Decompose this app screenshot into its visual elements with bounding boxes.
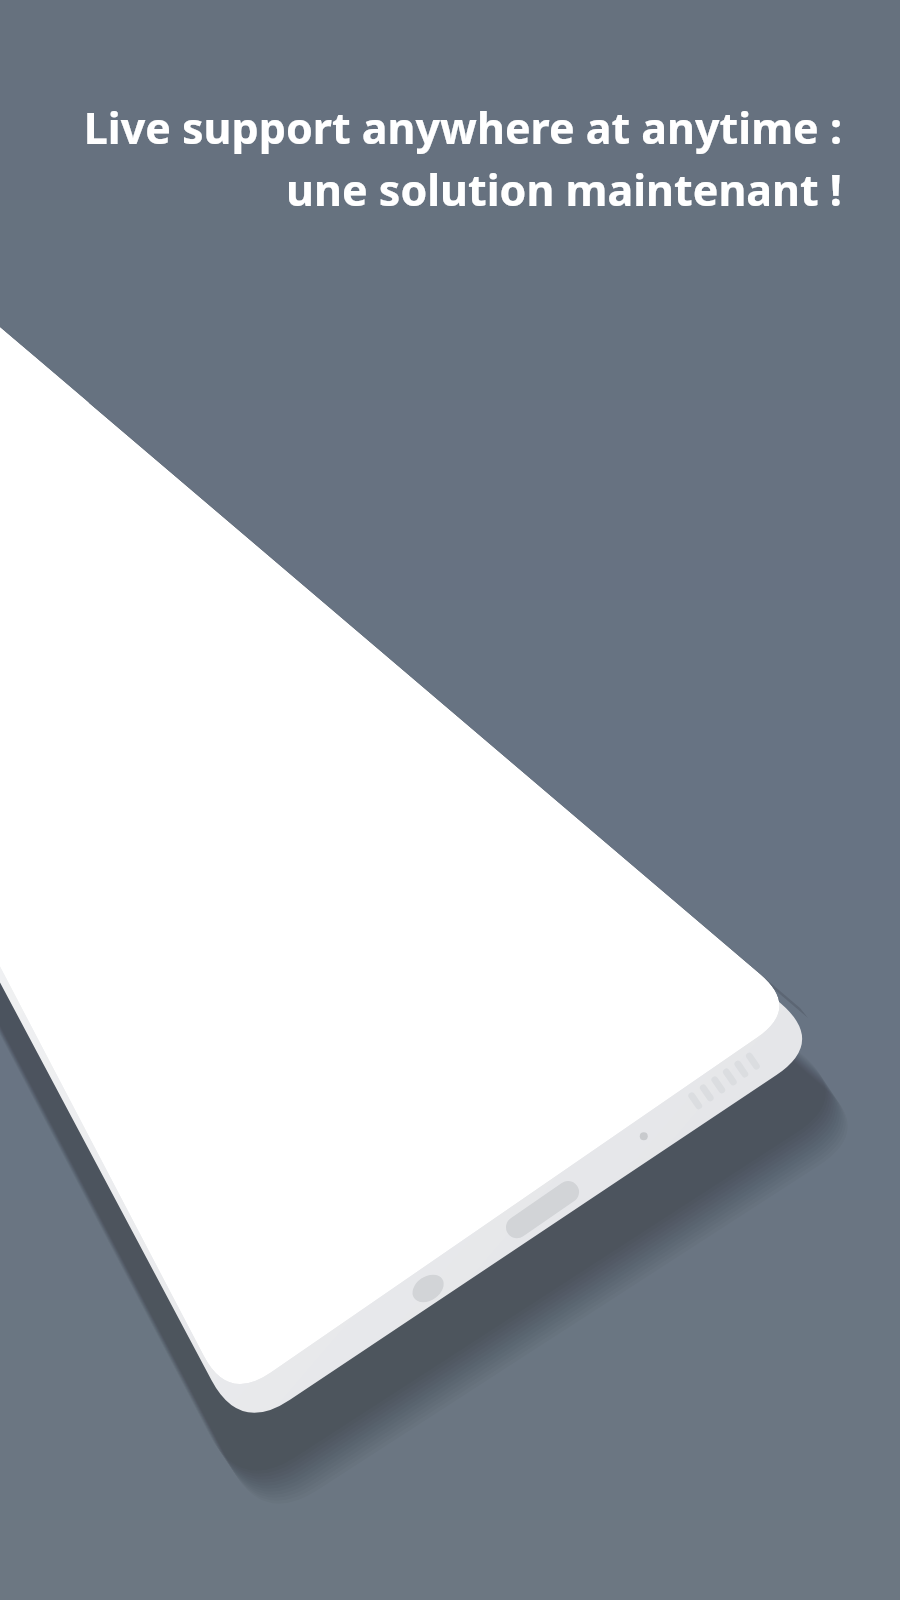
staticText: Live support anywhere at anytime : une s… [58, 98, 842, 218]
button[interactable]: App screenshot preview on phone [0, 0, 900, 1600]
